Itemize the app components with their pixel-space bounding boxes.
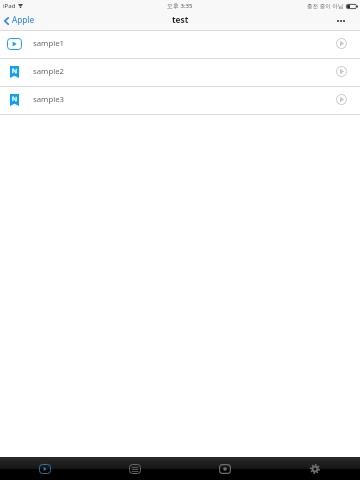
button[interactable]: Apple <box>0 15 41 26</box>
staticText: Apple <box>12 14 35 25</box>
button[interactable]: More options <box>331 16 360 26</box>
staticText: sample3 <box>33 94 65 105</box>
button[interactable]: Play sample3 <box>329 88 354 113</box>
staticText: sample2 <box>33 66 65 77</box>
button[interactable]: sample1 <box>0 31 360 58</box>
button[interactable]: sample3 <box>0 87 360 114</box>
staticText: test <box>172 14 189 25</box>
staticText: 오후 3:35 <box>167 2 193 10</box>
button[interactable]: Video <box>0 457 90 480</box>
button[interactable]: Play sample2 <box>329 60 354 85</box>
button[interactable]: Play sample1 <box>329 32 354 57</box>
button[interactable]: sample2 <box>0 59 360 86</box>
button[interactable]: Settings <box>270 457 360 480</box>
staticText: sample1 <box>33 38 65 49</box>
button[interactable]: Camera <box>180 457 270 480</box>
button[interactable]: List <box>90 457 180 480</box>
staticText: iPad <box>3 2 16 10</box>
staticText: 충전 중이 아님 <box>307 2 344 10</box>
